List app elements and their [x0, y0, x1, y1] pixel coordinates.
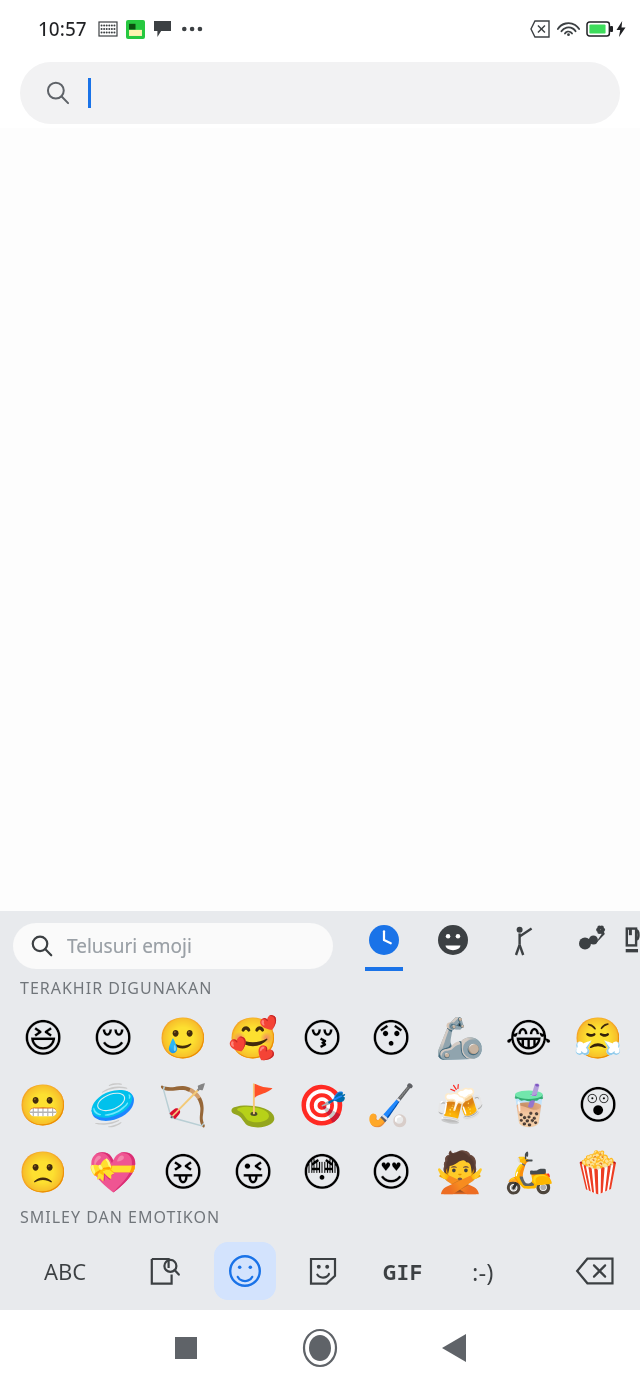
button[interactable]: 🏹 [148, 1072, 218, 1139]
staticText: 😌 [92, 1015, 134, 1062]
staticText: GIF [383, 1256, 423, 1286]
button[interactable]: Back [399, 1310, 509, 1386]
staticText: Telusuri emoji [67, 933, 192, 959]
button[interactable]: 🍻 [425, 1072, 494, 1139]
button[interactable]: 🙅 [425, 1139, 494, 1206]
staticText: 🍻 [435, 1082, 485, 1129]
button[interactable]: 😂 [494, 1005, 563, 1072]
button[interactable]: 😝 [148, 1139, 218, 1206]
button[interactable]: 😚 [287, 1005, 356, 1072]
staticText: 🛵 [504, 1149, 554, 1196]
staticText: SMILEY DAN EMOTIKON [20, 1206, 221, 1228]
button[interactable]: 🥏 [78, 1072, 148, 1139]
button[interactable]: Telusuri emoji [13, 923, 333, 969]
button[interactable]: Animals and nature [556, 919, 625, 973]
button[interactable]: 🎯 [287, 1072, 356, 1139]
staticText: 💝 [88, 1149, 138, 1196]
staticText: 🥏 [88, 1082, 138, 1129]
staticText: 😚 [301, 1015, 343, 1062]
staticText: 😜 [232, 1149, 274, 1196]
staticText: 😍 [370, 1149, 412, 1196]
staticText: 🍿 [573, 1149, 623, 1196]
button[interactable]: 😤 [563, 1005, 632, 1072]
staticText: TERAKHIR DIGUNAKAN [20, 977, 213, 999]
button[interactable]: 🧋 [494, 1072, 563, 1139]
button[interactable]: 😲 [563, 1072, 632, 1139]
staticText: 10:57 [38, 16, 87, 42]
button[interactable]: Recents [131, 1310, 241, 1386]
staticText: 🏑 [366, 1082, 416, 1129]
staticText: 😆 [22, 1015, 64, 1062]
staticText: 😳 [301, 1149, 343, 1196]
staticText: 🎯 [297, 1082, 347, 1129]
button[interactable]: 😳 [287, 1139, 356, 1206]
button[interactable]: 🏑 [356, 1072, 425, 1139]
button[interactable]: Sticker [290, 1238, 356, 1304]
button[interactable]: Recent [349, 919, 418, 973]
staticText: 😤 [573, 1015, 623, 1062]
button[interactable]: ABC [0, 1232, 130, 1310]
button[interactable]: 😜 [218, 1139, 287, 1206]
button[interactable]: :-) [446, 1234, 520, 1308]
button[interactable]: Food and drink [625, 919, 640, 973]
button[interactable]: People [487, 919, 556, 973]
staticText: 😂 [505, 1015, 552, 1062]
button[interactable]: 😍 [356, 1139, 425, 1206]
button[interactable]: 🥲 [148, 1005, 218, 1072]
button[interactable]: Home [265, 1310, 375, 1386]
staticText: 🏹 [158, 1082, 208, 1129]
staticText: 🥰 [228, 1015, 278, 1062]
button[interactable]: 🥰 [218, 1005, 287, 1072]
button[interactable]: 😌 [78, 1005, 148, 1072]
button[interactable]: 😆 [8, 1005, 78, 1072]
button[interactable]: 😬 [8, 1072, 78, 1139]
staticText: 🙁 [18, 1149, 68, 1196]
button[interactable]: 🦾 [425, 1005, 494, 1072]
staticText: ABC [44, 1256, 87, 1286]
button[interactable]: Smileys [418, 919, 487, 973]
button[interactable]: GIF [366, 1234, 440, 1308]
staticText: 😝 [162, 1149, 204, 1196]
staticText: 😯 [370, 1015, 412, 1062]
button[interactable]: 🍿 [563, 1139, 632, 1206]
staticText: 😬 [18, 1082, 68, 1129]
staticText: 🥲 [158, 1015, 208, 1062]
button[interactable]: Emoji [214, 1242, 276, 1300]
staticText: 🦾 [435, 1015, 485, 1062]
button[interactable]: 💝 [78, 1139, 148, 1206]
button[interactable]: Backspace [556, 1232, 634, 1310]
button[interactable]: Search content [130, 1236, 200, 1306]
staticText: ⛳ [228, 1082, 278, 1129]
button[interactable]: ⛳ [218, 1072, 287, 1139]
button[interactable]: 🛵 [494, 1139, 563, 1206]
button[interactable]: 😯 [356, 1005, 425, 1072]
button[interactable]: Search [20, 62, 620, 124]
staticText: :-) [472, 1255, 494, 1288]
button[interactable]: 🙁 [8, 1139, 78, 1206]
other: Search [46, 81, 70, 105]
staticText: 🙅 [435, 1149, 485, 1196]
staticText: 🧋 [504, 1082, 554, 1129]
staticText: 😲 [577, 1082, 619, 1129]
